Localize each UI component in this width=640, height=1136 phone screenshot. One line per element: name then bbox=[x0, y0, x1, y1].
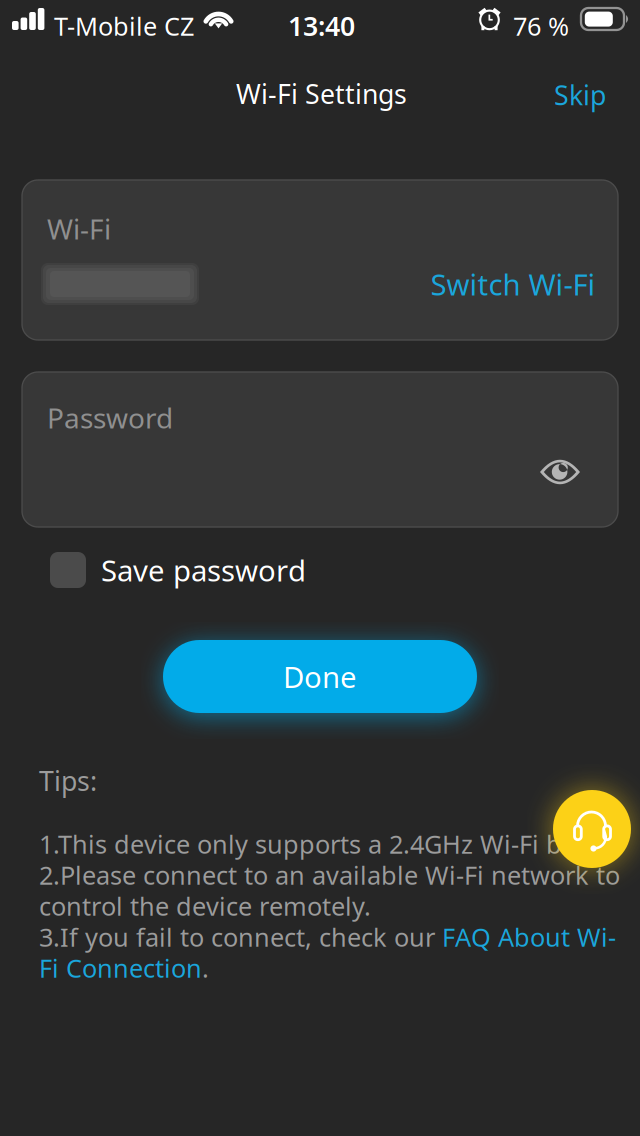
staticText: . bbox=[202, 951, 209, 985]
staticText: 3.If you fail to connect, check our bbox=[39, 920, 442, 954]
button[interactable]: Skip bbox=[535, 69, 625, 121]
staticText: T-Mobile CZ bbox=[54, 9, 194, 43]
button[interactable]: Customer support bbox=[553, 790, 631, 868]
button[interactable]: FAQ About Wi- bbox=[442, 920, 616, 954]
button[interactable]: Show password bbox=[529, 446, 591, 498]
staticText: Skip bbox=[554, 77, 606, 113]
staticText: 2.Please connect to an available Wi-Fi n… bbox=[39, 858, 620, 892]
staticText: Wi-Fi bbox=[47, 210, 111, 247]
staticText: control the device remotely. bbox=[39, 889, 371, 923]
staticText: Done bbox=[283, 657, 357, 696]
staticText: FAQ About Wi- bbox=[442, 920, 616, 954]
button[interactable]: Save password bbox=[50, 547, 350, 593]
staticText: Tips: bbox=[39, 763, 97, 798]
staticText: 1.This device only supports a 2.4GHz Wi-… bbox=[39, 827, 615, 861]
button[interactable]: Done bbox=[163, 640, 477, 713]
staticText: Wi-Fi Settings bbox=[236, 76, 407, 111]
staticText: Password bbox=[47, 399, 173, 436]
staticText: 76 % bbox=[513, 9, 569, 43]
button[interactable]: Switch Wi-Fi bbox=[428, 260, 598, 308]
staticText: 13:40 bbox=[288, 8, 355, 43]
button[interactable]: Fi Connection bbox=[39, 951, 202, 985]
staticText: Switch Wi-Fi bbox=[430, 264, 595, 303]
staticText: Save password bbox=[101, 550, 306, 589]
staticText: Fi Connection bbox=[39, 951, 202, 985]
